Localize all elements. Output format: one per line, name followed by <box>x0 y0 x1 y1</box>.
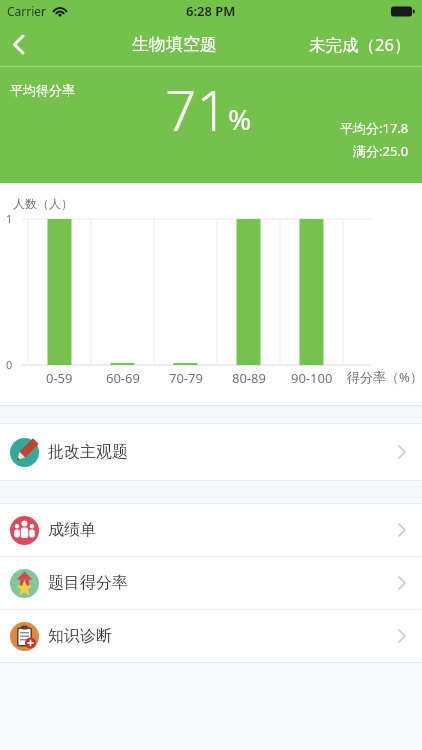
button[interactable]: 批改主观题 <box>0 424 422 480</box>
staticText: 成绩单 <box>48 520 96 540</box>
staticText: 0-59 <box>46 369 73 387</box>
staticText: 80-89 <box>232 369 266 387</box>
staticText: 0 <box>6 357 13 372</box>
button[interactable]: 未完成（26） <box>309 33 411 56</box>
staticText: 批改主观题 <box>48 442 128 462</box>
staticText: 得分率（%） <box>347 368 422 386</box>
staticText: Carrier <box>7 3 47 19</box>
staticText: 满分:25.0 <box>353 142 409 160</box>
staticText: 知识诊断 <box>48 626 112 646</box>
button[interactable]: 知识诊断 <box>0 610 422 662</box>
staticText: 90-100 <box>291 369 333 387</box>
staticText: 6:28 PM <box>186 2 236 20</box>
button[interactable]: 成绩单 <box>0 504 422 556</box>
staticText: 1 <box>6 211 13 226</box>
staticText: 60-69 <box>106 369 140 387</box>
button[interactable]: 题目得分率 <box>0 557 422 609</box>
staticText: 70-79 <box>169 369 203 387</box>
staticText: % <box>228 100 252 138</box>
staticText: 题目得分率 <box>48 573 128 593</box>
staticText: 生物填空题 <box>132 34 217 55</box>
staticText: 平均分:17.8 <box>340 119 409 137</box>
staticText: 人数（人） <box>13 196 73 211</box>
staticText: 平均得分率 <box>10 82 75 98</box>
staticText: 71 <box>165 72 228 147</box>
button[interactable] <box>13 35 24 54</box>
